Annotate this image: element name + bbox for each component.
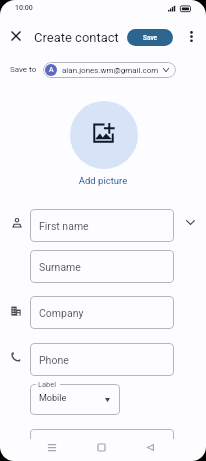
button[interactable]: [30, 384, 120, 415]
button[interactable]: Home: [89, 436, 113, 459]
staticText: A: [49, 66, 54, 74]
staticText: Label: [38, 380, 57, 389]
staticText: Company: [39, 307, 84, 319]
button[interactable]: Close: [6, 26, 26, 46]
button[interactable]: Add picture: [70, 101, 138, 169]
staticText: Save: [143, 34, 158, 42]
staticText: 10:00: [15, 4, 33, 12]
button[interactable]: Company: [30, 296, 174, 329]
button[interactable]: Surname: [30, 250, 174, 283]
staticText: First name: [39, 220, 89, 232]
staticText: Mobile: [39, 393, 67, 404]
button[interactable]: A: [43, 62, 176, 78]
button[interactable]: More options: [181, 26, 201, 46]
button[interactable]: Back: [138, 436, 162, 459]
staticText: Surname: [39, 261, 81, 273]
button[interactable]: [30, 429, 174, 449]
button[interactable]: First name: [30, 209, 174, 242]
button[interactable]: Recent apps: [40, 436, 64, 459]
staticText: Create contact: [34, 30, 119, 45]
staticText: alan.jones.wm@gmail.com: [62, 66, 159, 75]
button[interactable]: Expand name fields: [178, 210, 202, 234]
staticText: Add picture: [0, 175, 206, 186]
staticText: Save to: [10, 65, 37, 74]
button[interactable]: Save: [127, 29, 173, 46]
button[interactable]: Phone: [30, 343, 174, 376]
staticText: Phone: [39, 354, 69, 366]
